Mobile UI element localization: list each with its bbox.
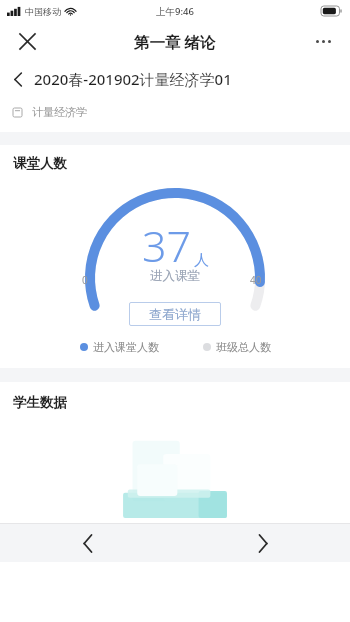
button[interactable]: 查看详情 <box>129 302 221 326</box>
staticText: 学生数据 <box>13 394 67 411</box>
button[interactable]: Close <box>10 24 44 58</box>
button[interactable]: 2020春-201902计量经济学01 <box>0 60 350 98</box>
staticText: 查看详情 <box>149 306 201 322</box>
staticText: 计量经济学 <box>32 105 87 119</box>
staticText: 第一章 绪论 <box>134 31 216 52</box>
staticText: 班级总人数 <box>216 340 271 354</box>
staticText: 0 <box>82 273 88 287</box>
button[interactable]: 进入课堂人数 <box>80 340 159 354</box>
button[interactable]: 班级总人数 <box>203 340 271 354</box>
staticText: 2020春-201902计量经济学01 <box>34 69 232 89</box>
button[interactable]: Next <box>175 524 350 562</box>
staticText: 进入课堂人数 <box>93 340 159 354</box>
staticText: 人 <box>194 251 209 270</box>
button[interactable]: Previous <box>0 524 175 562</box>
staticText: 课堂人数 <box>13 155 67 172</box>
staticText: 37 <box>142 216 192 275</box>
staticText: 40 <box>250 273 262 287</box>
staticText: 进入课堂 <box>150 268 200 284</box>
staticText: 上午9:46 <box>156 5 194 18</box>
staticText: 中国移动 <box>25 6 61 17</box>
button[interactable]: More options <box>306 24 340 58</box>
